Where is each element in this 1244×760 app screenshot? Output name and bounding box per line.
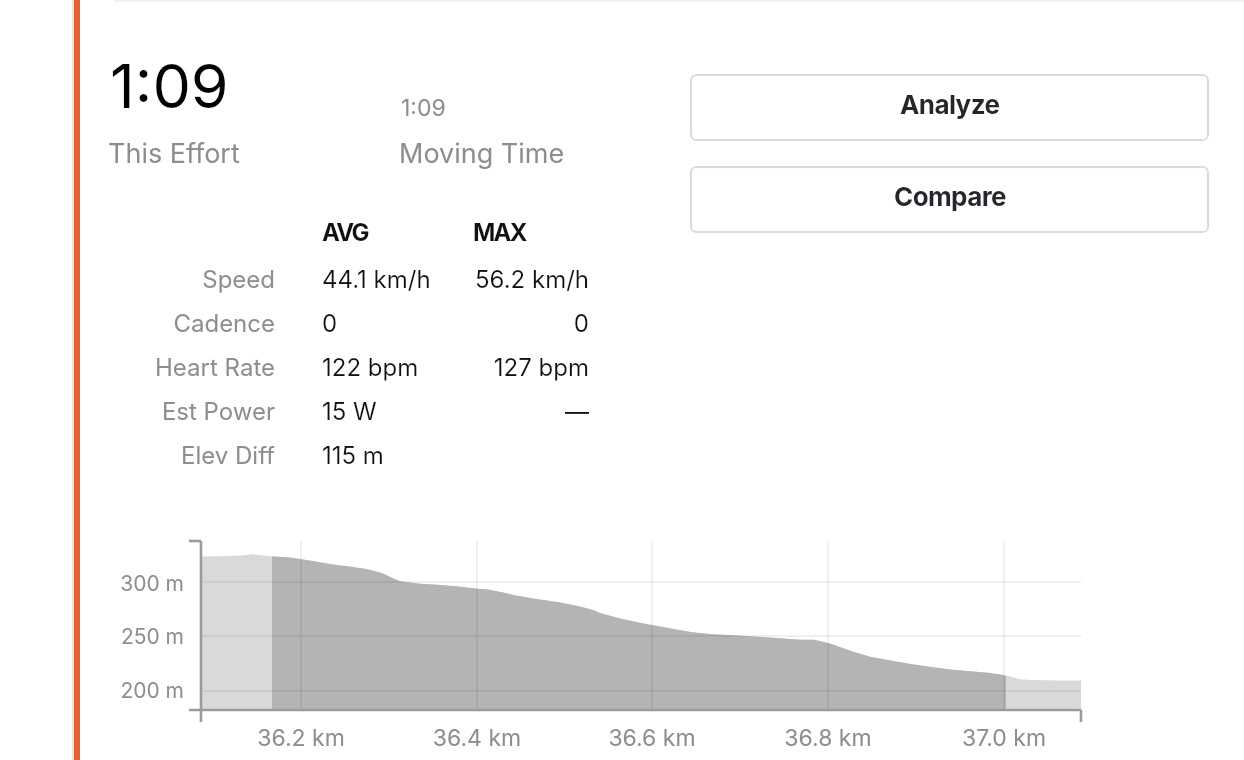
button[interactable]: Compare	[690, 166, 1209, 233]
staticText: Est Power	[0, 397, 275, 426]
staticText: 300 m	[0, 571, 184, 596]
staticText: 36.8 km	[748, 724, 908, 752]
staticText: 127 bpm	[0, 353, 589, 382]
staticText: 250 m	[0, 624, 184, 649]
staticText: —	[0, 397, 589, 426]
staticText: 36.6 km	[572, 724, 732, 752]
staticText: Cadence	[0, 309, 275, 338]
staticText: 1:09	[110, 49, 229, 123]
staticText: 200 m	[0, 678, 184, 703]
staticText: AVG	[322, 218, 368, 247]
staticText: 0	[322, 309, 338, 338]
staticText: 1:09	[401, 94, 446, 122]
staticText: Elev Diff	[0, 441, 275, 470]
staticText: 37.0 km	[924, 724, 1084, 752]
staticText: 56.2 km/h	[0, 265, 589, 294]
staticText: MAX	[473, 218, 526, 247]
staticText: 15 W	[322, 397, 377, 426]
staticText: 36.2 km	[221, 724, 381, 752]
staticText: Moving Time	[399, 137, 565, 170]
staticText: 115 m	[322, 441, 384, 470]
staticText: 122 bpm	[322, 353, 419, 382]
staticText: Speed	[0, 265, 275, 294]
staticText: 0	[0, 309, 589, 338]
staticText: 36.4 km	[397, 724, 557, 752]
staticText: This Effort	[108, 137, 240, 170]
staticText: 44.1 km/h	[322, 265, 431, 294]
staticText: Analyze	[900, 89, 1000, 120]
staticText: Heart Rate	[0, 353, 275, 382]
button[interactable]: Analyze	[690, 74, 1209, 141]
staticText: Compare	[894, 181, 1006, 212]
